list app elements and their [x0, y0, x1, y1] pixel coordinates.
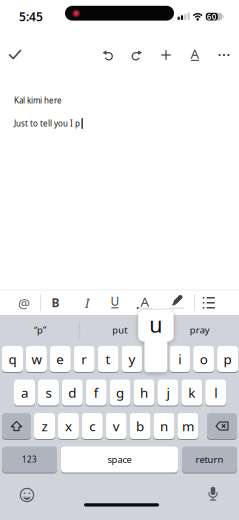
staticText: h [140, 384, 148, 401]
staticText: g [116, 384, 124, 401]
staticText: v [113, 417, 120, 435]
button[interactable]: a [14, 379, 35, 405]
staticText: n [160, 417, 168, 435]
staticText: pray [190, 324, 210, 336]
staticText: U [110, 293, 119, 309]
button[interactable] [207, 413, 237, 439]
button[interactable]: v [106, 413, 127, 439]
button[interactable] [2, 413, 31, 439]
staticText: B [51, 294, 59, 310]
button[interactable]: 123 [2, 446, 57, 472]
staticText: a [21, 384, 28, 401]
staticText: space [107, 453, 131, 466]
staticText: x [65, 417, 72, 435]
staticText: q [8, 350, 16, 368]
button[interactable]: h [133, 379, 154, 405]
staticText: t [106, 350, 111, 368]
staticText: put [112, 324, 127, 336]
button[interactable]: space [61, 446, 178, 472]
button[interactable]: m [177, 413, 198, 439]
button[interactable]: g [110, 379, 131, 405]
button[interactable]: return [182, 446, 237, 472]
button[interactable]: t [98, 346, 119, 372]
button[interactable]: o [193, 346, 214, 372]
button[interactable]: x [58, 413, 79, 439]
button[interactable]: I [79, 294, 95, 310]
button[interactable]: e [50, 346, 71, 372]
staticText: p [224, 350, 232, 368]
staticText: Kal kimi here [14, 95, 62, 106]
staticText: y [128, 350, 135, 368]
button[interactable]: “p” [0, 314, 79, 345]
button[interactable] [218, 54, 229, 56]
button[interactable]: pray [160, 314, 239, 345]
staticText: l [214, 384, 217, 401]
button[interactable] [206, 486, 220, 502]
button[interactable]: c [82, 413, 103, 439]
button[interactable]: U [107, 294, 123, 310]
button[interactable]: A [189, 48, 201, 62]
staticText: r [81, 350, 87, 368]
staticText: i [178, 350, 181, 368]
button[interactable]: j [157, 379, 178, 405]
staticText: o [200, 350, 208, 368]
button[interactable] [202, 296, 216, 310]
button[interactable]: n [153, 413, 174, 439]
staticText: d [68, 384, 76, 401]
button[interactable]: w [26, 346, 47, 372]
staticText: b [136, 417, 144, 435]
staticText: k [188, 384, 195, 401]
button[interactable] [161, 50, 171, 60]
staticText: “p” [34, 324, 46, 336]
button[interactable] [9, 49, 21, 59]
staticText: u [149, 310, 162, 339]
staticText: w [31, 350, 41, 368]
button[interactable]: d [62, 379, 83, 405]
button[interactable] [19, 487, 35, 503]
button[interactable]: put [80, 314, 159, 345]
staticText: 60 [207, 11, 217, 22]
button[interactable]: l [205, 379, 226, 405]
button[interactable]: B [47, 294, 63, 310]
staticText: m [182, 417, 194, 435]
button[interactable]: f [86, 379, 107, 405]
staticText: c [89, 417, 95, 435]
button[interactable]: q [2, 346, 23, 372]
staticText: z [41, 417, 47, 435]
staticText: 5:45 [19, 8, 43, 24]
staticText: I [85, 294, 89, 311]
staticText: j [166, 384, 169, 401]
button[interactable]: z [34, 413, 55, 439]
button[interactable]: @ [16, 295, 32, 311]
staticText: e [56, 350, 64, 368]
button[interactable] [168, 293, 186, 310]
staticText: @ [18, 294, 30, 312]
staticText: Just to tell you I p [14, 118, 80, 129]
staticText: f [94, 384, 99, 401]
button[interactable]: p [217, 346, 238, 372]
button[interactable]: s [38, 379, 59, 405]
button[interactable]: y [121, 346, 142, 372]
button[interactable]: r [74, 346, 95, 372]
button[interactable] [101, 49, 114, 62]
button[interactable]: A [135, 294, 155, 310]
button[interactable]: k [181, 379, 202, 405]
staticText: 123 [22, 454, 37, 465]
staticText: return [195, 453, 223, 466]
button[interactable]: i [169, 346, 190, 372]
staticText: s [45, 384, 51, 401]
button[interactable] [130, 49, 143, 62]
staticText: A [190, 45, 199, 62]
button[interactable]: b [130, 413, 151, 439]
staticText: A [140, 293, 149, 310]
